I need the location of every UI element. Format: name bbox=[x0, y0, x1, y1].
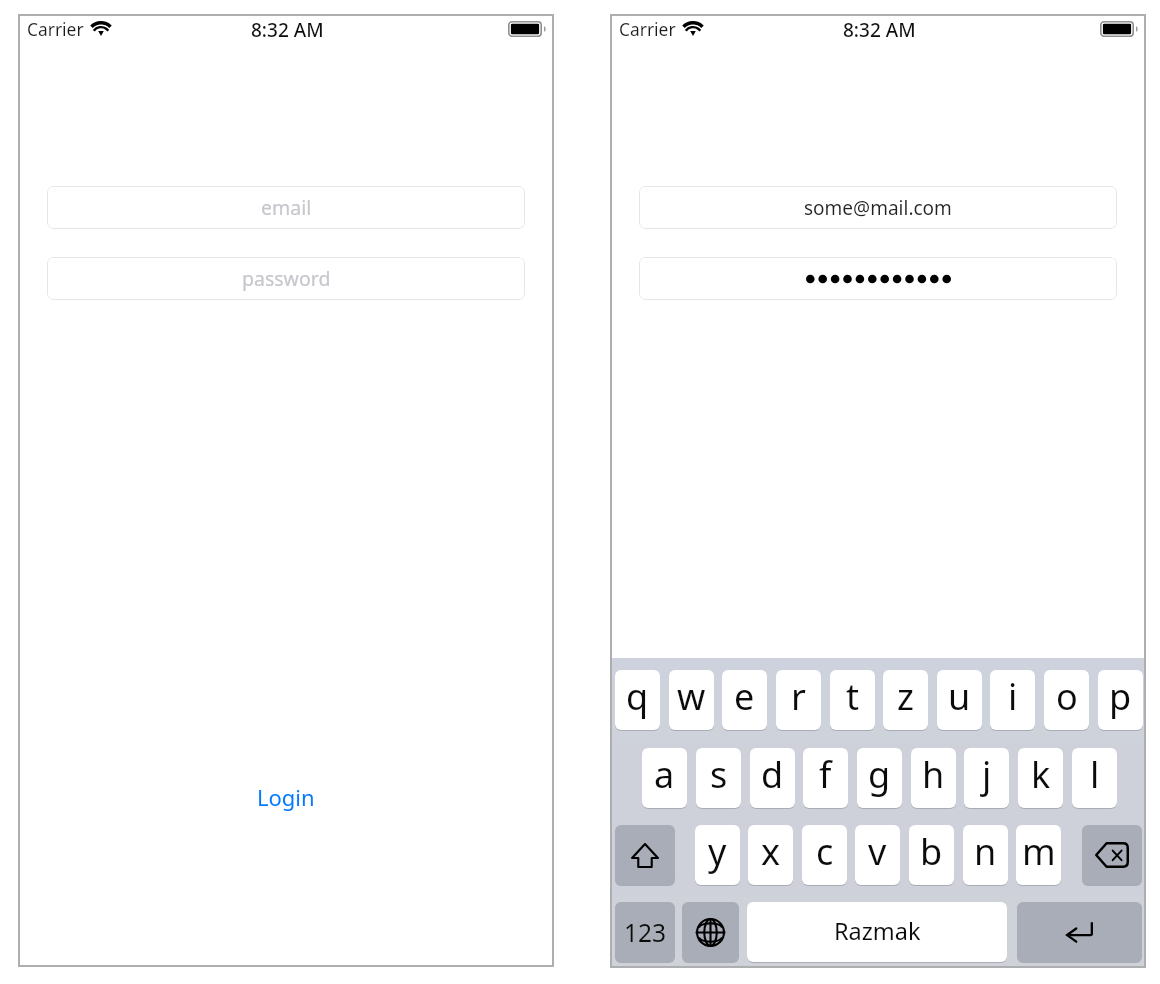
staticText: k bbox=[1031, 750, 1051, 799]
staticText: f bbox=[819, 750, 832, 799]
staticText: 8:32 AM bbox=[843, 17, 916, 43]
staticText: e bbox=[734, 672, 755, 721]
button[interactable]: t bbox=[830, 670, 875, 730]
button[interactable]: m bbox=[1016, 825, 1061, 885]
button[interactable]: v bbox=[855, 825, 900, 885]
staticText: email bbox=[261, 194, 312, 221]
button[interactable]: e bbox=[722, 670, 767, 730]
button[interactable] bbox=[639, 257, 1117, 300]
staticText: p bbox=[1109, 672, 1132, 721]
staticText: o bbox=[1056, 672, 1078, 721]
staticText: b bbox=[920, 827, 943, 876]
button[interactable]: Razmak bbox=[747, 902, 1007, 962]
button[interactable]: u bbox=[937, 670, 982, 730]
staticText: Razmak bbox=[834, 915, 921, 947]
staticText: Carrier bbox=[27, 17, 84, 41]
button[interactable]: s bbox=[696, 748, 741, 808]
staticText: n bbox=[974, 827, 997, 876]
staticText: i bbox=[1008, 672, 1018, 721]
staticText: a bbox=[654, 750, 675, 799]
staticText: r bbox=[791, 672, 806, 721]
button[interactable]: email bbox=[47, 186, 525, 229]
staticText: q bbox=[626, 672, 649, 721]
staticText: m bbox=[1022, 827, 1056, 876]
staticText: h bbox=[922, 750, 945, 799]
button[interactable]: Login bbox=[18, 777, 554, 817]
button[interactable]: n bbox=[963, 825, 1008, 885]
button[interactable]: a bbox=[642, 748, 687, 808]
staticText: w bbox=[677, 672, 706, 721]
button[interactable]: password bbox=[47, 257, 525, 300]
button[interactable]: d bbox=[750, 748, 795, 808]
staticText: Carrier bbox=[619, 17, 676, 41]
button[interactable]: b bbox=[909, 825, 954, 885]
staticText: u bbox=[948, 672, 971, 721]
staticText: s bbox=[710, 750, 728, 799]
button[interactable]: o bbox=[1044, 670, 1089, 730]
staticText: t bbox=[846, 672, 859, 721]
button[interactable]: Shift bbox=[615, 825, 675, 885]
staticText: l bbox=[1090, 750, 1100, 799]
staticText: password bbox=[242, 265, 331, 292]
button[interactable]: j bbox=[964, 748, 1009, 808]
button[interactable]: p bbox=[1098, 670, 1143, 730]
button[interactable]: y bbox=[695, 825, 740, 885]
staticText: z bbox=[897, 672, 914, 721]
button[interactable]: Backspace bbox=[1082, 825, 1142, 885]
button[interactable]: l bbox=[1072, 748, 1117, 808]
button[interactable]: Return bbox=[1017, 902, 1142, 962]
button[interactable]: 123 bbox=[615, 902, 675, 962]
staticText: Login bbox=[257, 782, 315, 812]
staticText: j bbox=[982, 750, 992, 799]
button[interactable]: z bbox=[883, 670, 928, 730]
button[interactable]: some@mail.com bbox=[639, 186, 1117, 229]
staticText: c bbox=[816, 827, 834, 876]
staticText: v bbox=[868, 827, 887, 876]
button[interactable]: i bbox=[990, 670, 1035, 730]
staticText: y bbox=[708, 827, 727, 876]
staticText: 123 bbox=[624, 916, 667, 949]
staticText: some@mail.com bbox=[804, 195, 952, 221]
staticText: 8:32 AM bbox=[251, 17, 324, 43]
button[interactable]: h bbox=[911, 748, 956, 808]
staticText: x bbox=[761, 827, 781, 876]
button[interactable]: r bbox=[776, 670, 821, 730]
button[interactable]: w bbox=[669, 670, 714, 730]
staticText: d bbox=[761, 750, 784, 799]
button[interactable]: f bbox=[803, 748, 848, 808]
button[interactable]: Change keyboard bbox=[682, 902, 739, 962]
button[interactable]: c bbox=[802, 825, 847, 885]
button[interactable]: g bbox=[857, 748, 902, 808]
button[interactable]: x bbox=[748, 825, 793, 885]
button[interactable]: k bbox=[1018, 748, 1063, 808]
staticText: g bbox=[868, 750, 891, 799]
button[interactable]: q bbox=[615, 670, 660, 730]
